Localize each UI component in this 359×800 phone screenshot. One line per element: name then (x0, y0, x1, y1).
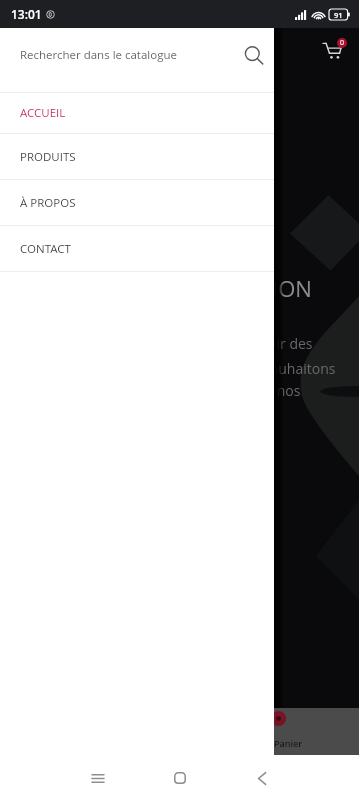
staticText: ACCUEIL (20, 105, 66, 121)
button[interactable]: À PROPOS (0, 180, 274, 225)
button[interactable]: Back (242, 758, 282, 798)
staticText: 13:01 (11, 6, 42, 22)
staticText: Panier (274, 737, 303, 749)
button[interactable]: Home (160, 758, 200, 798)
staticText: partager notre savoir-faire unique avec … (19, 381, 301, 400)
staticText: PRODUITS (20, 149, 76, 165)
staticText: souvenirs inoubliables pour nos clients.… (0, 359, 336, 378)
staticText: À PROPOS (20, 195, 76, 211)
button[interactable]: Search (236, 38, 268, 70)
staticText: 0 (340, 38, 345, 48)
staticText: Nous créons des pièces uniques pour offr… (5, 334, 313, 353)
button[interactable]: Recent apps (78, 758, 118, 798)
button[interactable]: PRODUITS (0, 134, 274, 179)
staticText: 91 (334, 10, 343, 20)
staticText: CONTACT (20, 241, 71, 257)
button[interactable]: ACCUEIL (0, 93, 274, 133)
button[interactable]: Shopping cart (318, 36, 348, 66)
staticText: Rechercher dans le catalogue (20, 47, 177, 63)
staticText: NOTRE VISION (164, 273, 312, 303)
button[interactable]: CONTACT (0, 226, 274, 271)
